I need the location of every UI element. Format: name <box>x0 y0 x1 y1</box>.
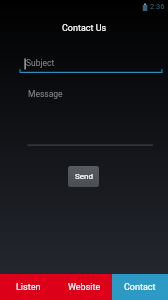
staticText: Website <box>68 282 101 293</box>
button[interactable]: Contact <box>112 274 168 300</box>
staticText: Message <box>28 89 63 99</box>
button[interactable]: Subject <box>20 55 162 73</box>
staticText: Listen <box>16 282 41 293</box>
button[interactable]: Send <box>68 166 99 187</box>
staticText: Contact <box>124 282 156 293</box>
staticText: Contact Us <box>62 23 107 34</box>
button[interactable]: Website <box>56 274 112 300</box>
staticText: Send <box>75 172 93 181</box>
button[interactable]: Listen <box>0 274 56 300</box>
staticText: Subject <box>26 58 55 68</box>
staticText: 2:36 <box>150 2 165 11</box>
button[interactable]: Message <box>27 85 153 145</box>
